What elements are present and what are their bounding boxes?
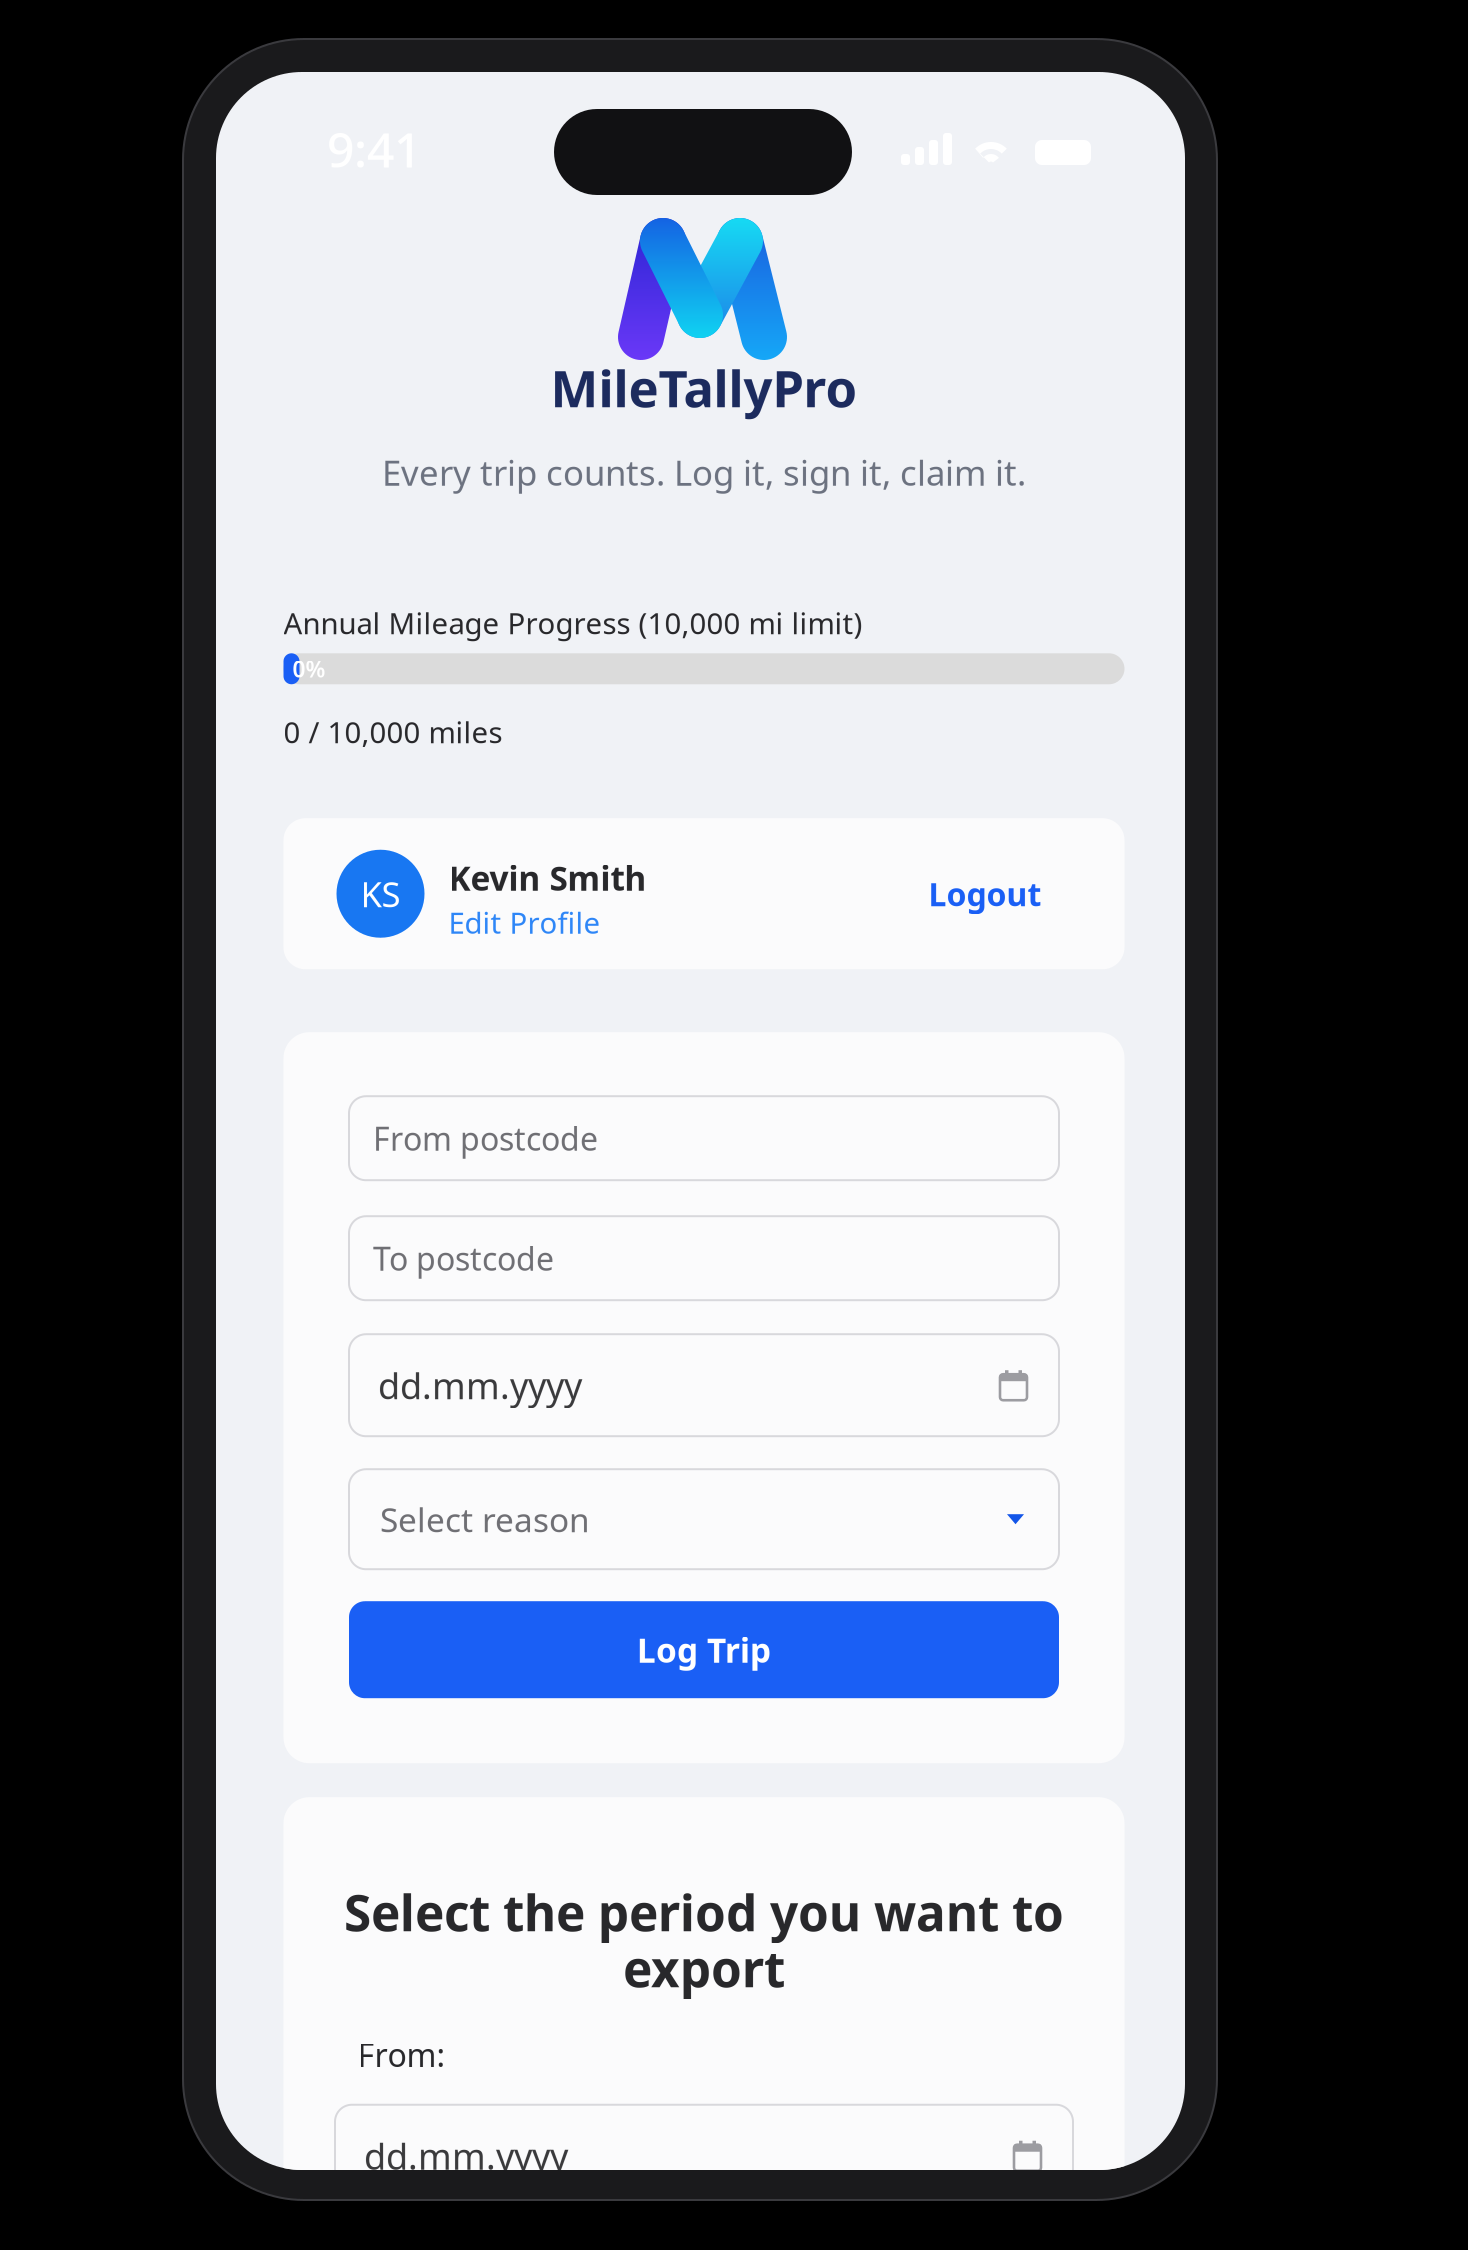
staticText: Logout xyxy=(928,872,1041,915)
staticText: Log Trip xyxy=(637,1628,771,1672)
staticText: Annual Mileage Progress (10,000 mi limit… xyxy=(283,603,862,642)
staticText: From postcode xyxy=(373,1117,598,1159)
staticText: Every trip counts. Log it, sign it, clai… xyxy=(382,449,1026,495)
staticText: 0 / 10,000 miles xyxy=(283,712,502,751)
staticText: dd.mm.yyyy xyxy=(364,2132,568,2180)
staticText: Edit Profile xyxy=(448,903,600,942)
staticText: From: xyxy=(357,2033,445,2076)
button[interactable]: Edit Profile xyxy=(448,903,600,942)
button[interactable]: Log Trip xyxy=(349,1601,1059,1698)
staticText: dd.mm.yyyy xyxy=(378,1361,582,1409)
staticText: Select reason xyxy=(380,1497,590,1541)
button[interactable]: Logout xyxy=(928,872,1041,915)
staticText: To postcode xyxy=(373,1237,554,1279)
staticText: MileTallyPro xyxy=(550,354,857,421)
staticText: KS xyxy=(360,871,400,917)
staticText: Select the period you want to xyxy=(344,1879,1064,1945)
staticText: Kevin Smith xyxy=(448,856,646,900)
staticText: 9:41 xyxy=(327,117,421,181)
staticText: 0% xyxy=(292,654,325,684)
staticText: export xyxy=(623,1935,785,2001)
